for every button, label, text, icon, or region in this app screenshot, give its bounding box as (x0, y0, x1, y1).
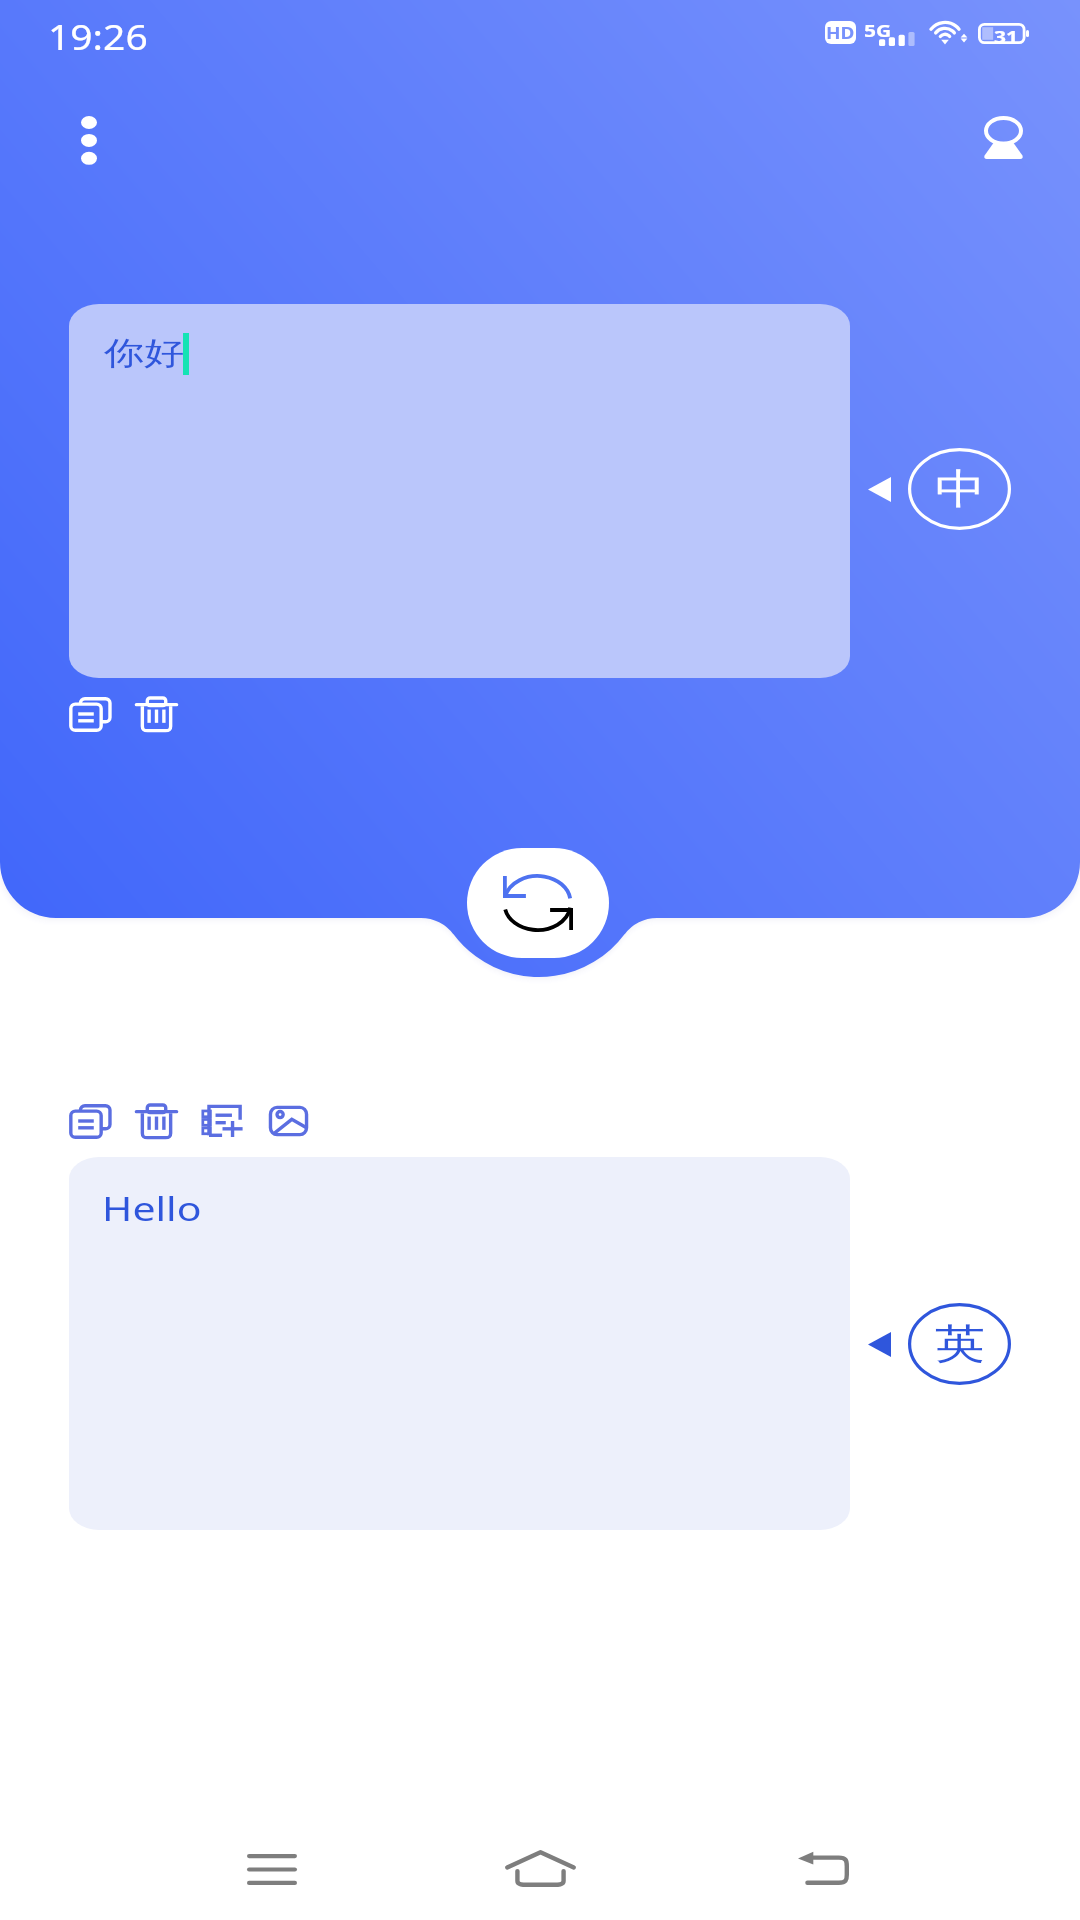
button[interactable]: Copy translation (70, 1096, 111, 1146)
staticText: HD (826, 23, 855, 42)
staticText: 你好 (104, 333, 184, 373)
staticText: 英 (935, 1319, 985, 1370)
button[interactable]: More options (42, 78, 135, 202)
button[interactable]: 你好 (69, 304, 850, 678)
button[interactable]: Language 英 (908, 1303, 1011, 1385)
staticText: 19:26 (48, 13, 148, 60)
button[interactable]: Add note (202, 1096, 243, 1146)
staticText: 中 (935, 464, 985, 515)
button[interactable]: Delete translation (136, 1096, 177, 1146)
staticText: 5G (864, 19, 892, 42)
button[interactable]: Image (268, 1096, 309, 1146)
button[interactable]: Language 中 (908, 448, 1011, 530)
button[interactable]: Delete (136, 689, 177, 739)
button[interactable]: Home (492, 1828, 588, 1908)
staticText: 31 (994, 25, 1019, 42)
button[interactable]: Copy (70, 689, 111, 739)
button[interactable]: Hello (69, 1157, 850, 1530)
staticText: Hello (102, 1186, 202, 1230)
button[interactable]: Recents (224, 1829, 320, 1909)
button[interactable]: Profile (955, 75, 1051, 199)
button[interactable]: Swap languages (467, 848, 609, 958)
button[interactable]: Back (775, 1827, 871, 1907)
